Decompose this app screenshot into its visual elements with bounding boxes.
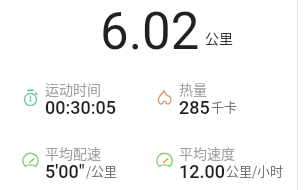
staticText: 00:30:05 xyxy=(45,97,116,118)
staticText: 公里 xyxy=(205,28,233,48)
staticText: 平均配速 xyxy=(45,143,101,163)
button[interactable]: 平均速度 xyxy=(152,129,304,190)
staticText: 热量 xyxy=(179,79,207,99)
button[interactable]: 热量 xyxy=(152,65,304,129)
staticText: 千卡 xyxy=(211,97,238,116)
staticText: /公里 xyxy=(86,161,118,180)
staticText: 12.00 xyxy=(179,161,225,182)
staticText: 运动时间 xyxy=(45,79,101,99)
staticText: 公里/小时 xyxy=(226,161,284,180)
button[interactable]: 运动时间 xyxy=(0,65,152,129)
staticText: 6.02 xyxy=(100,2,200,58)
staticText: 285 xyxy=(179,97,210,118)
staticText: 5'00" xyxy=(45,161,85,182)
staticText: 平均速度 xyxy=(179,143,235,163)
button[interactable]: 平均配速 xyxy=(0,129,152,190)
